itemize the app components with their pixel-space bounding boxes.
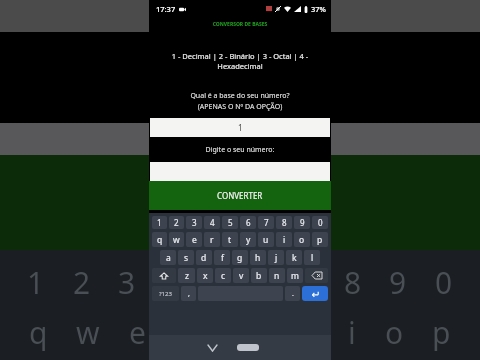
button[interactable]: r [204, 232, 220, 247]
staticText: 4 [210, 217, 215, 228]
staticText: 7 [299, 262, 317, 303]
button[interactable]: o [294, 232, 310, 247]
button[interactable]: 1 [150, 118, 330, 137]
staticText: y [246, 234, 251, 246]
staticText: 17:37 [156, 4, 176, 14]
button[interactable]: CONVERTER [149, 181, 331, 210]
staticText: 1 [27, 262, 45, 303]
button[interactable]: f [214, 250, 230, 265]
button[interactable]: h [250, 250, 266, 265]
button[interactable]: . [285, 286, 300, 301]
staticText: r [210, 234, 214, 246]
staticText: i [348, 312, 356, 353]
staticText: 1 [157, 217, 162, 228]
button[interactable]: 2 [169, 216, 184, 229]
button[interactable]: e [186, 232, 202, 247]
staticText: u [300, 312, 319, 353]
button[interactable]: Backspace [305, 268, 328, 283]
staticText: 6 [254, 262, 272, 303]
button[interactable]: Back [203, 339, 221, 357]
button[interactable]: d [196, 250, 212, 265]
staticText: q [29, 312, 48, 353]
button[interactable]: 4 [204, 216, 220, 229]
button[interactable]: Home [237, 344, 259, 351]
staticText: w [173, 234, 180, 246]
staticText: . [292, 289, 294, 299]
button[interactable]: 1 [152, 216, 167, 229]
button[interactable]: 0 [312, 216, 328, 229]
staticText: j [275, 252, 278, 264]
staticText: l [311, 252, 314, 264]
staticText: 7 [264, 217, 269, 228]
button[interactable]: 3 [186, 216, 202, 229]
button[interactable]: n [269, 268, 285, 283]
button[interactable]: j [268, 250, 284, 265]
button[interactable]: s [178, 250, 194, 265]
staticText: e [192, 234, 197, 246]
staticText: 0 [435, 262, 453, 303]
staticText: q [157, 234, 163, 246]
button[interactable]: , [181, 286, 196, 301]
staticText: k [292, 252, 297, 264]
staticText: , [188, 289, 190, 299]
staticText: r [175, 312, 188, 353]
staticText: b [256, 270, 262, 282]
button[interactable]: x [197, 268, 213, 283]
button[interactable]: l [304, 250, 320, 265]
staticText: o [385, 312, 404, 353]
staticText: 1 [238, 122, 243, 133]
button[interactable]: q [152, 232, 167, 247]
button[interactable]: 7 [258, 216, 274, 229]
button[interactable]: c [215, 268, 231, 283]
staticText: 2 [174, 217, 179, 228]
staticText: Digite o seu número: [149, 145, 331, 155]
button[interactable]: i [276, 232, 292, 247]
staticText: CONVERSOR DE BASES [149, 21, 331, 28]
staticText: s [184, 252, 189, 264]
button[interactable]: b [251, 268, 267, 283]
staticText: n [274, 270, 280, 282]
staticText: 8 [344, 262, 362, 303]
staticText: z [185, 270, 189, 282]
staticText: 9 [300, 217, 305, 228]
staticText: t [228, 234, 232, 246]
button[interactable]: Enter [302, 286, 328, 301]
staticText: p [317, 234, 323, 246]
button[interactable]: 8 [276, 216, 292, 229]
button[interactable]: y [240, 232, 256, 247]
button[interactable]: k [286, 250, 302, 265]
button[interactable]: u [258, 232, 274, 247]
button[interactable]: Shift [152, 268, 176, 283]
staticText: u [263, 234, 269, 246]
staticText: 3 [192, 217, 197, 228]
staticText: t [216, 312, 227, 353]
staticText: 8 [282, 217, 287, 228]
staticText: 0 [318, 217, 323, 228]
staticText: 3 [118, 262, 136, 303]
staticText: 5 [208, 262, 226, 303]
staticText: x [203, 270, 208, 282]
staticText: w [76, 312, 100, 353]
staticText: 6 [246, 217, 251, 228]
button[interactable]: a [160, 250, 176, 265]
button[interactable]: z [178, 268, 195, 283]
button[interactable]: t [222, 232, 238, 247]
button[interactable]: 5 [222, 216, 238, 229]
staticText: m [291, 270, 299, 282]
staticText: o [299, 234, 305, 246]
staticText: ?123 [159, 290, 172, 298]
button[interactable]: ?123 [152, 286, 179, 301]
button[interactable]: m [287, 268, 303, 283]
staticText: 37% [311, 4, 326, 14]
button[interactable]: 6 [240, 216, 256, 229]
button[interactable]: 9 [294, 216, 310, 229]
button[interactable]: p [312, 232, 328, 247]
button[interactable]: v [233, 268, 249, 283]
staticText: 5 [228, 217, 233, 228]
staticText: 9 [389, 262, 407, 303]
button[interactable]: g [232, 250, 248, 265]
staticText: i [283, 234, 286, 246]
button[interactable]: w [169, 232, 184, 247]
